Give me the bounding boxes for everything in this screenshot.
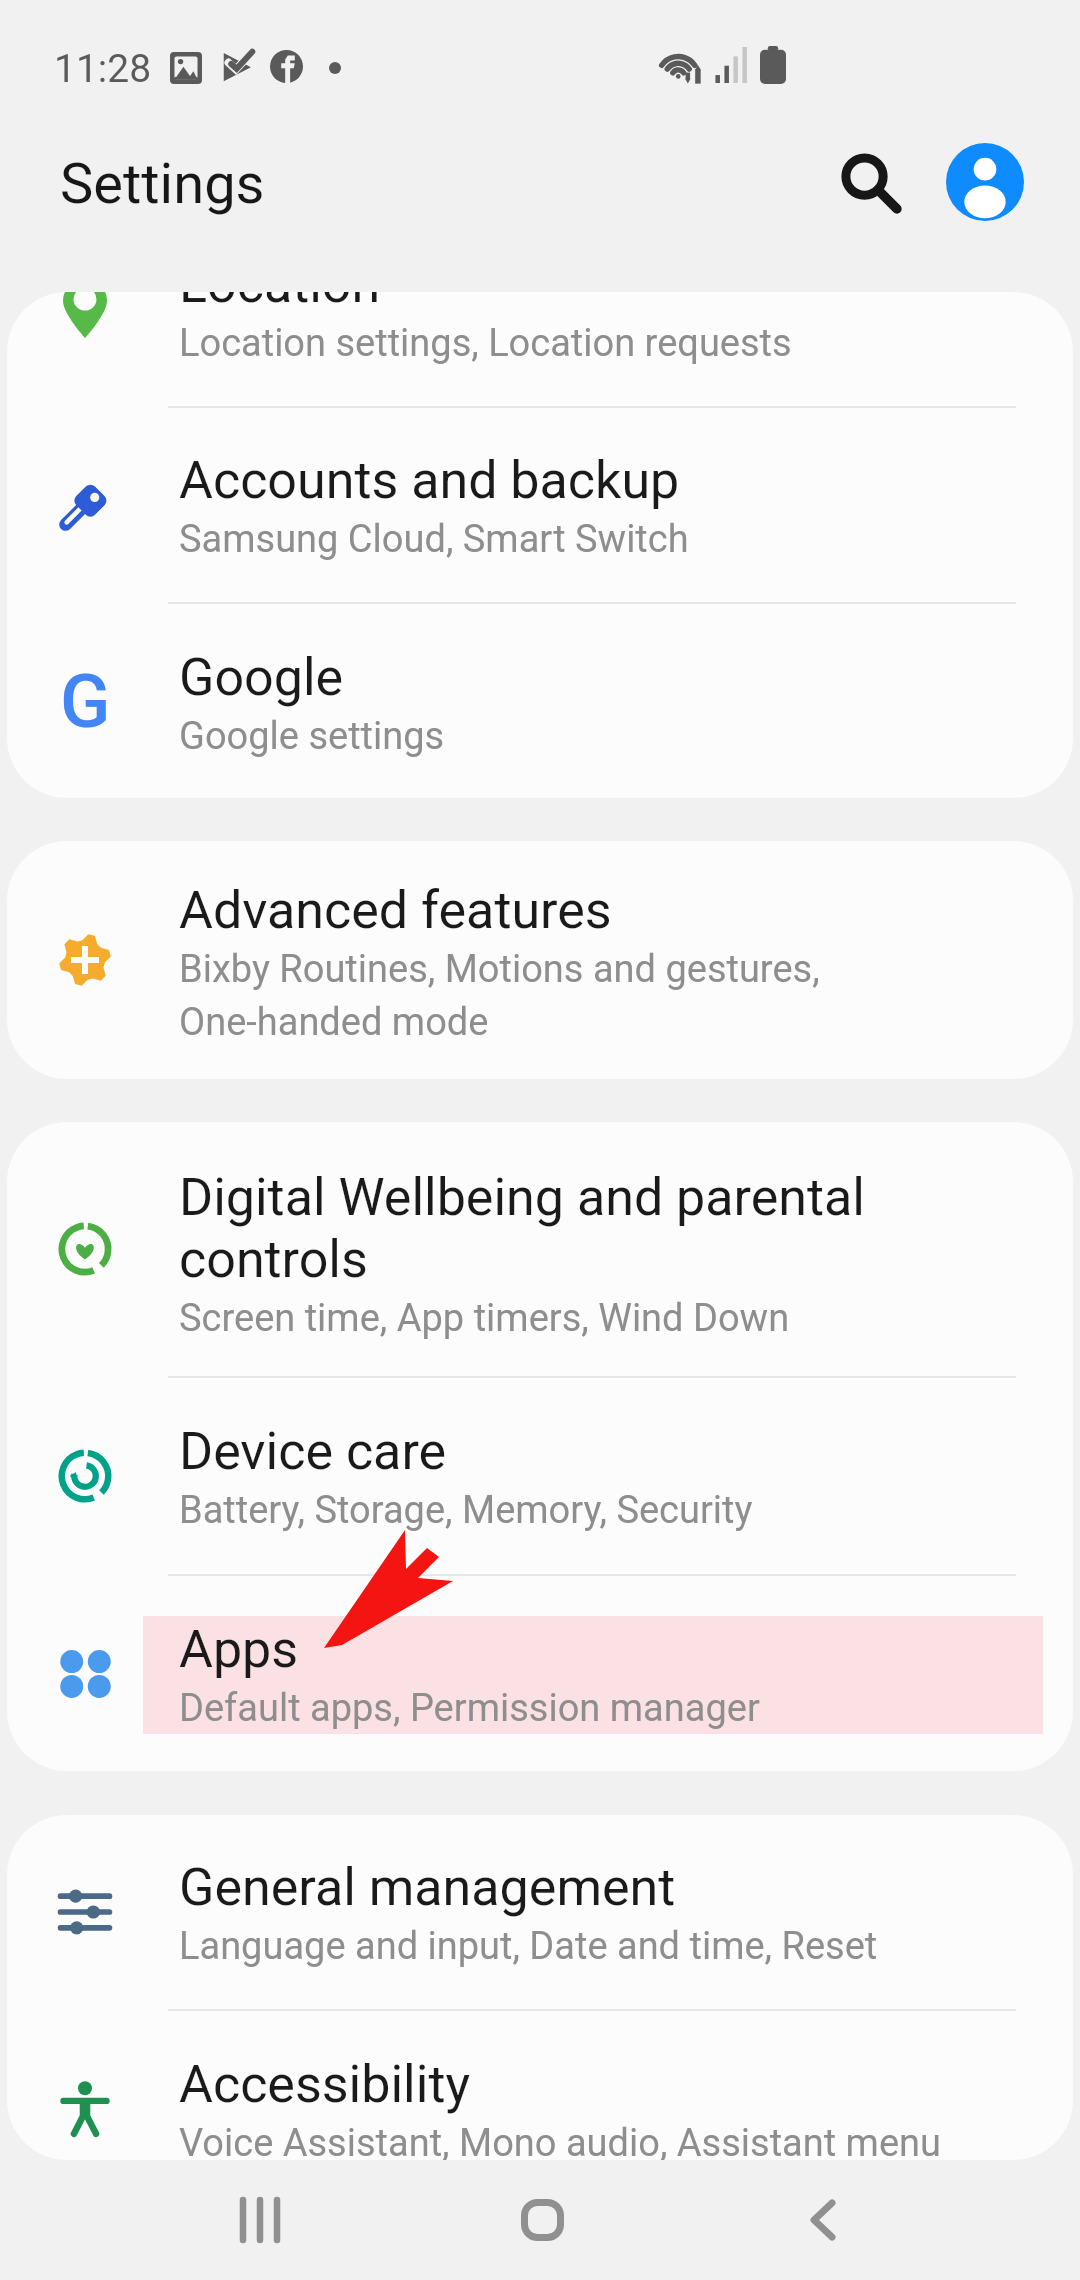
staticText: Voice Assistant, Mono audio, Assistant m… [179, 2121, 942, 2160]
button[interactable]: Profile [932, 129, 1038, 235]
staticText: Screen time, App timers, Wind Down [179, 1296, 790, 1341]
staticText: General management [179, 1857, 676, 1918]
button[interactable]: G [7, 604, 1073, 798]
staticText: Language and input, Date and time, Reset [179, 1924, 878, 1969]
staticText: Device care [179, 1421, 447, 1482]
staticText: Accounts and backup [179, 450, 680, 511]
button[interactable]: General management [7, 1815, 1073, 2009]
button[interactable]: Apps [7, 1576, 1073, 1771]
button[interactable]: Back [743, 2160, 903, 2280]
staticText: Advanced features [179, 880, 612, 941]
button[interactable]: Accounts and backup [7, 408, 1073, 602]
staticText: 11:28 [54, 46, 152, 92]
staticText: Default apps, Permission manager [179, 1686, 760, 1731]
staticText: Google [179, 647, 344, 708]
button[interactable]: Recent apps [180, 2160, 340, 2280]
button[interactable]: Advanced features [7, 841, 1073, 1079]
button[interactable]: Search [816, 128, 926, 238]
staticText: Apps [179, 1619, 299, 1680]
staticText: Location [179, 292, 381, 315]
staticText: Battery, Storage, Memory, Security [179, 1488, 753, 1533]
button[interactable]: Device care [7, 1378, 1073, 1574]
staticText: G [60, 658, 111, 745]
button[interactable]: Home [462, 2160, 622, 2280]
staticText: Accessibility [179, 2054, 471, 2115]
staticText: Location settings, Location requests [179, 321, 792, 366]
button[interactable]: Accessibility [7, 2011, 1073, 2160]
staticText: Settings [60, 151, 265, 217]
button[interactable]: Location [7, 292, 1073, 406]
staticText: Google settings [179, 714, 445, 759]
button[interactable]: Digital Wellbeing and parental controls [7, 1122, 1073, 1376]
staticText: Samsung Cloud, Smart Switch [179, 517, 689, 562]
staticText: Bixby Routines, Motions and gestures, On… [179, 947, 820, 1044]
staticText: Digital Wellbeing and parental controls [179, 1167, 1043, 1290]
